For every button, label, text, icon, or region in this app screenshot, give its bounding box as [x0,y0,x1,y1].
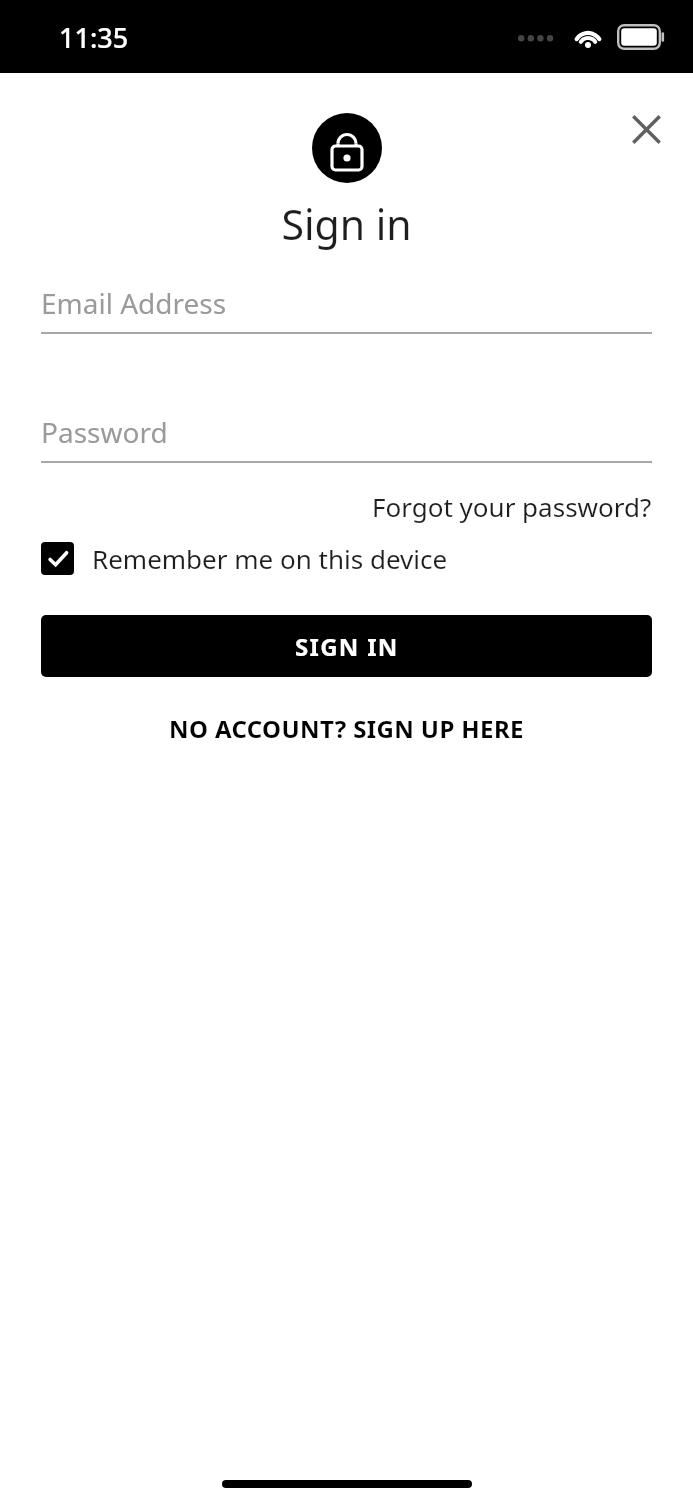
staticText: Forgot your password? [372,489,652,524]
staticText: Email Address [41,284,227,322]
button[interactable]: Email Address [41,284,652,334]
button[interactable]: Forgot your password? [372,489,652,524]
button[interactable]: Close [619,102,673,156]
staticText: 11:35 [59,19,129,56]
button[interactable]: Remember me on this device [41,541,448,576]
staticText: SIGN IN [295,630,399,663]
staticText: Sign in [0,196,693,252]
button[interactable]: Password [41,413,652,463]
staticText: NO ACCOUNT? SIGN UP HERE [169,712,524,745]
staticText: Password [41,413,168,451]
button[interactable]: SIGN IN [41,615,652,677]
staticText: Remember me on this device [92,541,448,576]
button[interactable]: NO ACCOUNT? SIGN UP HERE [161,708,532,749]
